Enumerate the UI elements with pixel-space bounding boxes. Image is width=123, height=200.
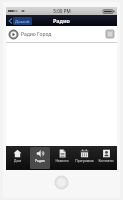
staticText: Программа [75, 159, 94, 163]
button[interactable]: Радио [30, 147, 50, 169]
button[interactable]: Опции [106, 30, 114, 38]
button[interactable]: Программа [74, 147, 94, 169]
staticText: Контакты [98, 159, 114, 163]
staticText: Радио [35, 159, 45, 163]
button[interactable]: Радио Город [6, 26, 117, 42]
staticText: Радио Город [21, 31, 106, 38]
staticText: Домой [15, 18, 30, 24]
button[interactable]: Дом [7, 147, 28, 169]
button[interactable]: Новости [52, 147, 72, 169]
staticText: Новости [55, 159, 69, 163]
button[interactable]: Контакты [96, 147, 116, 169]
button[interactable]: Домой [8, 16, 33, 26]
staticText: Радио [53, 17, 70, 24]
staticText: 5:00 PM [53, 8, 71, 14]
staticText: Дом [14, 159, 21, 163]
